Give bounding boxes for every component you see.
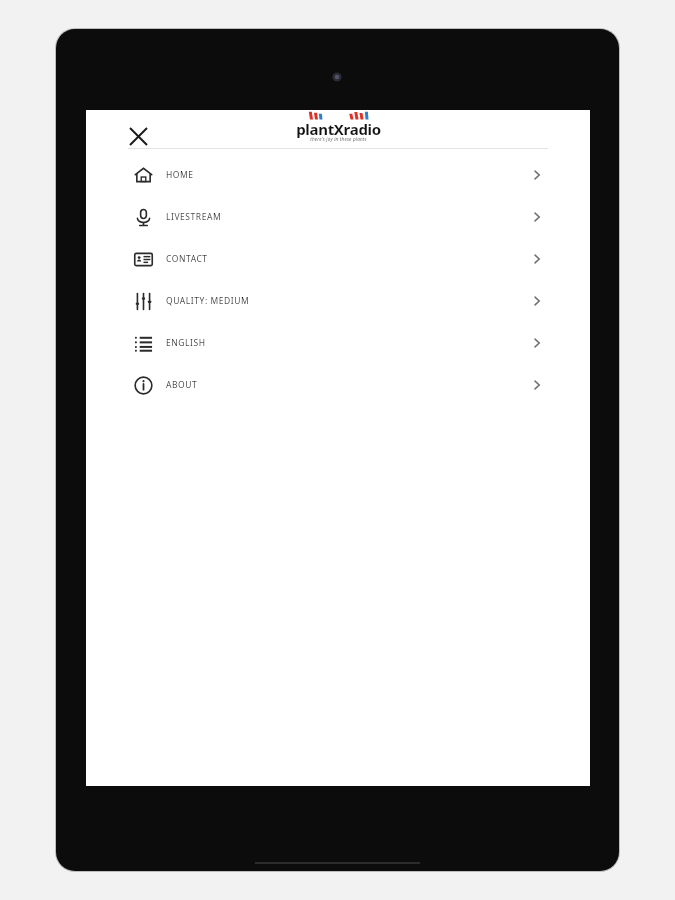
button[interactable]: plantXradio logo [288,111,388,149]
button[interactable]: CONTACT [128,238,548,280]
button[interactable]: ENGLISH [128,322,548,364]
button[interactable]: ABOUT [128,364,548,406]
button[interactable]: HOME [128,154,548,196]
staticText: ABOUT [166,379,198,391]
button[interactable]: Close [116,114,160,158]
staticText: LIVESTREAM [166,211,222,223]
staticText: QUALITY: MEDIUM [166,295,250,307]
button[interactable]: LIVESTREAM [128,196,548,238]
staticText: CONTACT [166,253,208,265]
staticText: ENGLISH [166,337,206,349]
staticText: HOME [166,169,194,181]
button[interactable]: QUALITY: MEDIUM [128,280,548,322]
staticText: there's joy in these plants [310,136,367,142]
staticText: plantXradio [296,119,381,139]
